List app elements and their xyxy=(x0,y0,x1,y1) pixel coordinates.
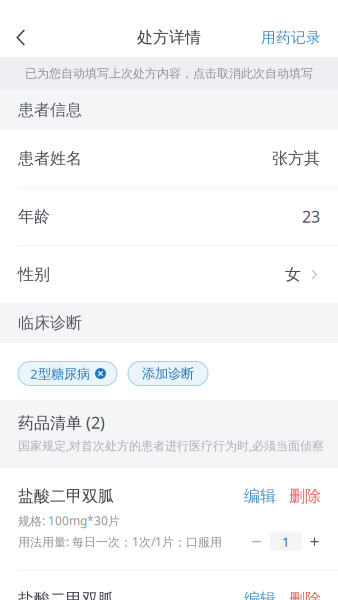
button[interactable]: 编辑 xyxy=(244,486,276,506)
staticText: 编辑 xyxy=(244,589,276,600)
button[interactable]: 删除 xyxy=(276,589,321,600)
staticText: 处方详情 xyxy=(137,27,201,48)
staticText: 年龄 xyxy=(18,206,50,227)
button[interactable]: 返回 xyxy=(0,19,42,56)
staticText: 23 xyxy=(302,206,320,227)
staticText: 已为您自动填写上次处方内容，点击取消此次自动填写 xyxy=(25,66,313,81)
staticText: 用法用量: 每日一次；1次/1片；口服用 xyxy=(18,533,222,550)
staticText: 临床诊断 xyxy=(18,313,82,333)
staticText: 盐酸二甲双胍 xyxy=(18,486,114,506)
button[interactable]: 减少 xyxy=(248,532,270,551)
button[interactable]: 添加诊断 xyxy=(128,361,208,385)
staticText: 性别 xyxy=(18,264,50,285)
staticText: 删除 xyxy=(289,589,321,600)
staticText: 编辑 xyxy=(244,486,276,506)
button[interactable]: 增加 xyxy=(302,532,321,551)
button[interactable]: 年龄 xyxy=(0,188,338,245)
button[interactable]: 2型糖尿病 xyxy=(18,361,117,385)
button[interactable]: 删除 xyxy=(276,486,321,506)
staticText: 规格: 100mg*30片 xyxy=(18,512,120,529)
staticText: 张方其 xyxy=(272,148,320,169)
staticText: 药品清单 (2) xyxy=(18,412,105,433)
button[interactable]: 用药记录 xyxy=(245,19,338,56)
button[interactable]: 已为您自动填写上次处方内容，点击取消此次自动填写 xyxy=(0,57,338,90)
staticText: 添加诊断 xyxy=(142,365,194,382)
staticText: 1 xyxy=(282,533,290,551)
button[interactable]: 患者姓名 xyxy=(0,130,338,187)
staticText: 盐酸二甲双胍 xyxy=(18,589,114,600)
button[interactable]: 编辑 xyxy=(244,589,276,600)
staticText: 删除 xyxy=(289,486,321,506)
staticText: 患者姓名 xyxy=(18,148,82,169)
button[interactable]: 性别 xyxy=(0,246,338,303)
staticText: 女 xyxy=(285,264,301,285)
staticText: 患者信息 xyxy=(18,100,82,120)
staticText: 用药记录 xyxy=(261,28,321,47)
staticText: 国家规定,对首次处方的患者进行医疗行为时,必须当面侦察 xyxy=(18,437,324,454)
staticText: 2型糖尿病 xyxy=(30,364,90,383)
